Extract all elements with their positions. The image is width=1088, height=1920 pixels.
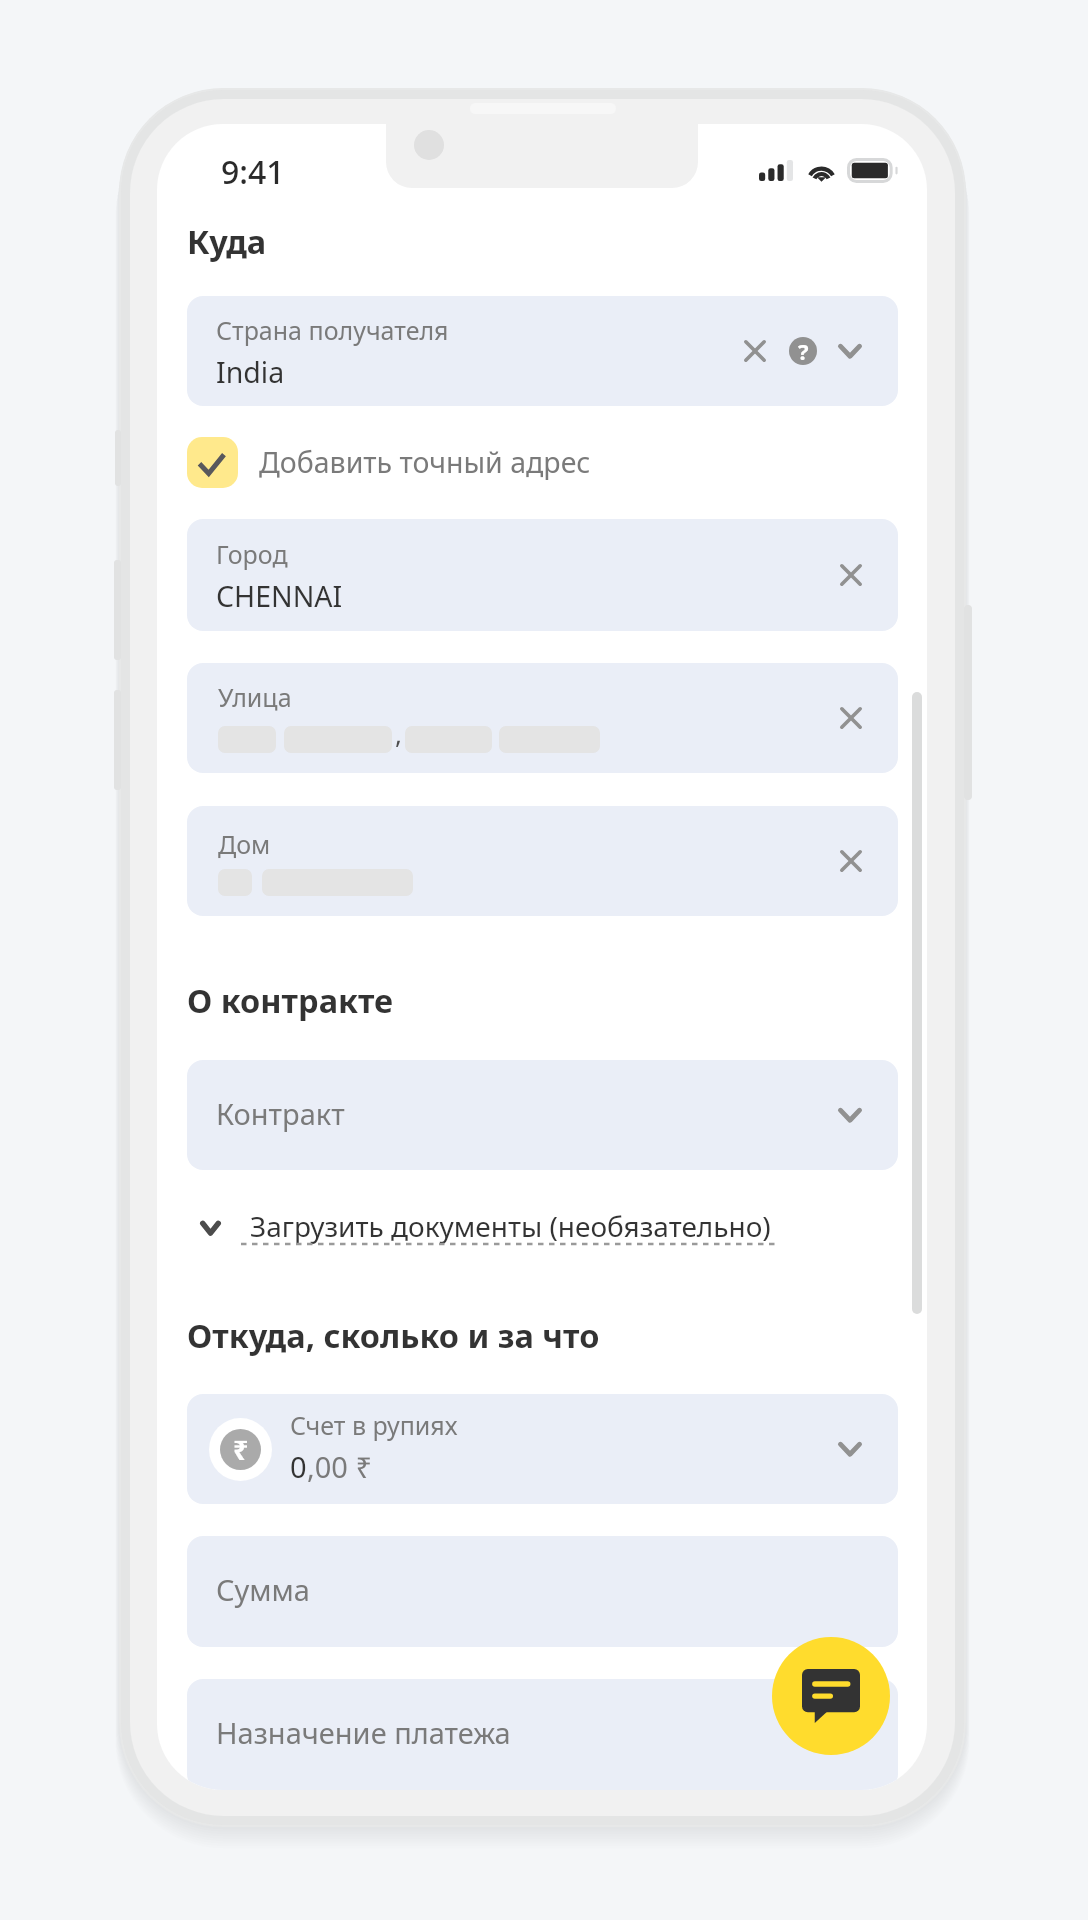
- button[interactable]: Очистить: [744, 340, 766, 362]
- staticText: Улица: [218, 680, 292, 714]
- staticText: О контракте: [187, 978, 394, 1022]
- staticText: Дом: [218, 827, 271, 861]
- staticText: Счет в рупиях: [290, 1408, 458, 1442]
- staticText: 9:41: [221, 150, 285, 194]
- staticText: Страна получателя: [216, 313, 449, 347]
- button[interactable]: Сумма: [187, 1536, 898, 1647]
- staticText: Куда: [187, 219, 267, 263]
- button[interactable]: Добавить точный адрес: [187, 437, 591, 488]
- button[interactable]: Назначение платежа: [187, 1679, 898, 1790]
- staticText: Назначение платежа: [216, 1713, 511, 1752]
- staticText: Контракт: [216, 1094, 345, 1133]
- staticText: Сумма: [216, 1570, 310, 1609]
- button[interactable]: Открыть чат: [772, 1637, 890, 1755]
- button[interactable]: Раскрыть список: [838, 339, 862, 363]
- button[interactable]: Страна получателя: [187, 296, 898, 406]
- button[interactable]: Дом: [187, 806, 898, 916]
- staticText: Город: [216, 537, 288, 571]
- button[interactable]: Загрузить документы (необязательно): [200, 1205, 780, 1249]
- button[interactable]: ₹: [187, 1394, 898, 1504]
- button[interactable]: Город: [187, 519, 898, 631]
- button[interactable]: Раскрыть список: [838, 1103, 862, 1127]
- button[interactable]: Очистить: [840, 564, 862, 586]
- button[interactable]: Справка: [789, 337, 817, 365]
- staticText: Откуда, сколько и за что: [187, 1313, 600, 1357]
- staticText: Загрузить документы (необязательно): [250, 1207, 771, 1245]
- staticText: ,: [395, 716, 402, 751]
- staticText: Добавить точный адрес: [259, 443, 591, 482]
- staticText: India: [216, 353, 285, 392]
- staticText: ?: [798, 337, 809, 364]
- staticText: ,00 ₹: [307, 1447, 373, 1486]
- staticText: 0: [290, 1447, 307, 1486]
- button[interactable]: Раскрыть список: [838, 1437, 862, 1461]
- button[interactable]: Очистить: [840, 707, 862, 729]
- button[interactable]: Очистить: [840, 850, 862, 872]
- button[interactable]: Улица: [187, 663, 898, 773]
- staticText: ₹: [233, 1431, 249, 1468]
- button[interactable]: Контракт: [187, 1060, 898, 1170]
- staticText: CHENNAI: [216, 577, 343, 616]
